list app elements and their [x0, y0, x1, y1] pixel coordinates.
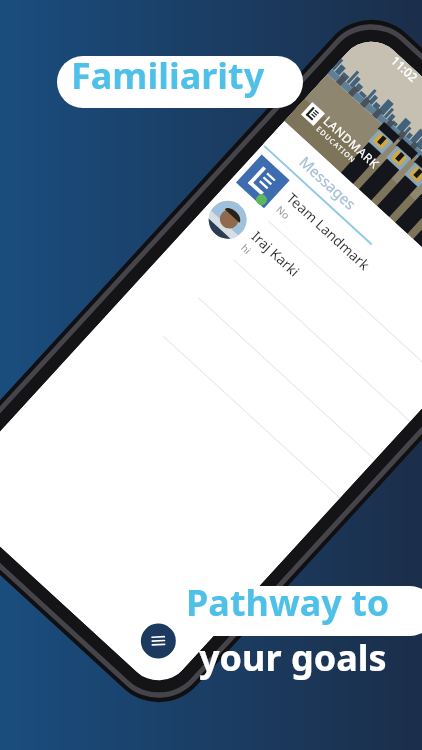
staticText: your goals: [199, 633, 387, 682]
staticText: Team Landmark: [283, 188, 374, 274]
staticText: Pathway to: [186, 586, 390, 627]
button[interactable]: Pathway to: [165, 586, 422, 636]
button[interactable]: Menu: [134, 616, 183, 666]
button[interactable]: Familiarity: [57, 56, 303, 108]
staticText: No: [273, 202, 293, 222]
staticText: Messages: [295, 152, 360, 214]
button[interactable]: Messages: [267, 125, 389, 240]
staticText: LANDMARK: [320, 112, 384, 172]
staticText: Iraj Karki: [248, 227, 304, 281]
button[interactable]: Iraj Karki: [192, 184, 422, 421]
staticText: hi: [238, 241, 254, 257]
staticText: EDUCATION: [314, 124, 358, 166]
button[interactable]: Team Landmark: [227, 145, 422, 383]
staticText: 11:02: [388, 54, 420, 85]
staticText: Familiarity: [71, 56, 265, 100]
